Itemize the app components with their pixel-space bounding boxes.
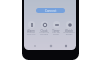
button[interactable]: Timer [50, 21, 62, 37]
staticText: Watch [63, 29, 75, 33]
staticText: Connect [45, 9, 57, 13]
staticText: Clock [38, 29, 50, 33]
staticText: London [38, 33, 50, 36]
staticText: Not set [50, 31, 62, 34]
staticText: Timer [50, 29, 62, 33]
staticText: Stopwatch [63, 31, 75, 34]
button[interactable]: Alarm [25, 21, 37, 37]
staticText: 12:45 PM [38, 31, 50, 34]
staticText: 00:00 [50, 33, 62, 36]
staticText: Sunday [25, 31, 37, 34]
staticText: Alarm [25, 29, 37, 33]
button[interactable]: Recent apps [61, 41, 70, 50]
button[interactable]: Watch [63, 21, 75, 37]
staticText: Ready [63, 33, 75, 36]
button[interactable]: Back [30, 41, 39, 50]
button[interactable]: Clock [38, 21, 50, 37]
button[interactable]: Connect [36, 8, 65, 13]
staticText: 7:00 AM [25, 33, 37, 36]
button[interactable]: Home [46, 41, 55, 50]
